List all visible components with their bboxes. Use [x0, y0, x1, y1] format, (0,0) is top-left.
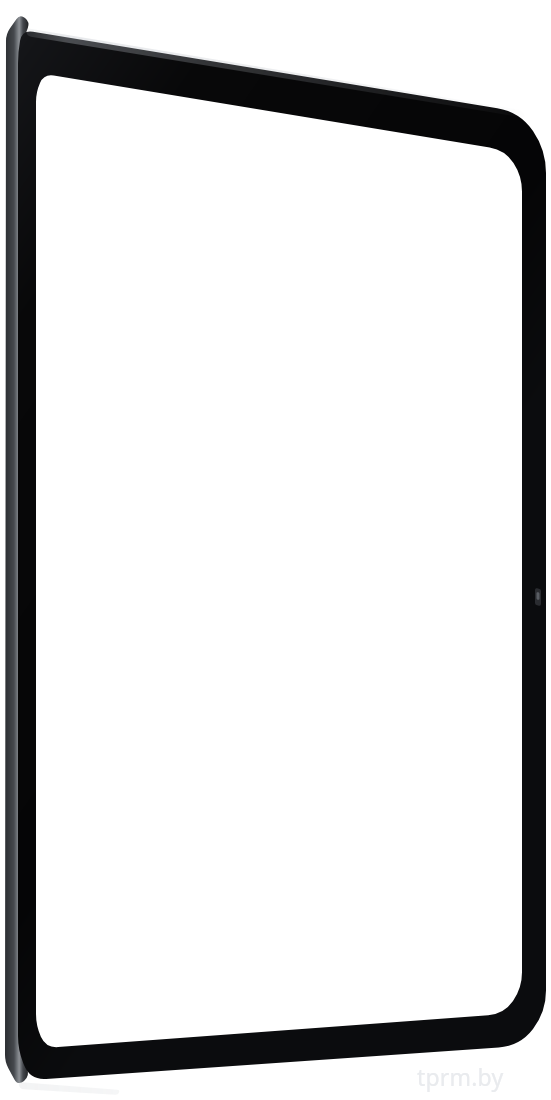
button[interactable]: Tablet product photo	[0, 0, 551, 1100]
staticText: tprm.by	[417, 1061, 504, 1092]
